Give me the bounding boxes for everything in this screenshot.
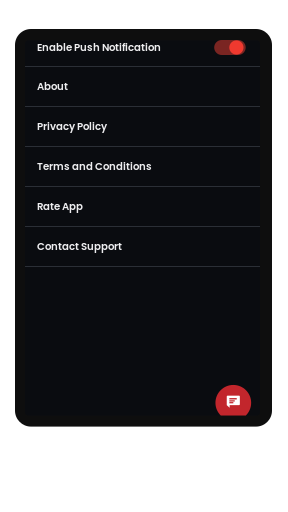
staticText: Contact Support: [37, 239, 122, 254]
button[interactable]: Enable Push Notification: [214, 40, 246, 55]
button[interactable]: Contact Support: [25, 227, 260, 267]
staticText: Enable Push Notification: [37, 40, 161, 55]
staticText: Terms and Conditions: [37, 159, 152, 174]
staticText: Privacy Policy: [37, 119, 107, 134]
button[interactable]: Rate App: [25, 187, 260, 227]
button[interactable]: About: [25, 67, 260, 107]
button[interactable]: Contact support chat: [215, 385, 251, 421]
button[interactable]: Privacy Policy: [25, 107, 260, 147]
staticText: Rate App: [37, 199, 83, 214]
button[interactable]: Terms and Conditions: [25, 147, 260, 187]
staticText: About: [37, 79, 68, 94]
